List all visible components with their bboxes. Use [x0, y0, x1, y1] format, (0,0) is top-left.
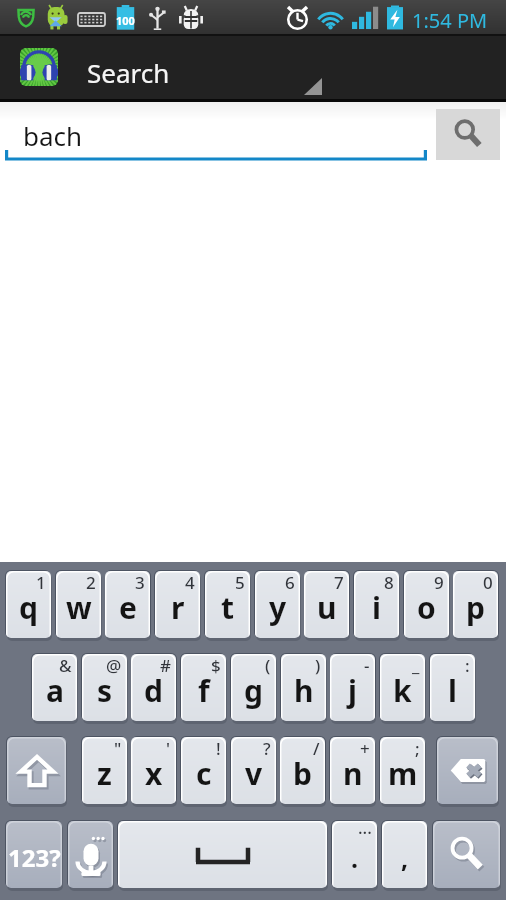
staticText: 0 [483, 571, 493, 594]
button[interactable]: @ [82, 654, 127, 721]
staticText: - [364, 654, 370, 677]
button[interactable]: 1 [6, 571, 51, 638]
staticText: 7 [334, 571, 344, 594]
button[interactable]: 7 [304, 571, 349, 638]
button[interactable]: 9 [404, 571, 449, 638]
button[interactable]: Search [436, 109, 500, 160]
button[interactable]: & [32, 654, 77, 721]
staticText: f [198, 670, 210, 711]
staticText: 1:54 PM [412, 7, 488, 34]
staticText: a [46, 670, 64, 711]
button[interactable]: shift [7, 737, 66, 804]
button[interactable]: ( [231, 654, 276, 721]
button[interactable]: ; [380, 737, 425, 804]
staticText: 1 [36, 571, 46, 594]
button[interactable]: 2 [56, 571, 101, 638]
staticText: x [145, 753, 163, 794]
button[interactable]: ) [281, 654, 326, 721]
button[interactable]: search [433, 821, 500, 888]
button[interactable]: " [82, 737, 127, 804]
staticText: p [466, 587, 485, 628]
staticText: ( [265, 654, 271, 677]
staticText: r [171, 587, 185, 628]
staticText: e [119, 587, 137, 628]
button[interactable]: mic [68, 821, 113, 888]
staticText: k [393, 670, 412, 711]
staticText: & [59, 654, 72, 677]
staticText: d [144, 670, 163, 711]
staticText: ! [216, 737, 221, 760]
staticText: t [221, 587, 235, 628]
button[interactable]: : [430, 654, 475, 721]
staticText: j [348, 670, 357, 711]
staticText: c [196, 753, 212, 794]
staticText: ; [415, 737, 420, 760]
staticText: @ [106, 654, 122, 677]
staticText: ··· [358, 821, 372, 844]
button[interactable]: 8 [354, 571, 399, 638]
button[interactable]: 123? [6, 821, 62, 888]
button[interactable]: ' [131, 737, 176, 804]
staticText: h [294, 670, 314, 711]
button[interactable]: App icon [20, 48, 58, 86]
button[interactable]: 0 [453, 571, 498, 638]
staticText: q [19, 587, 38, 628]
staticText: g [244, 670, 263, 711]
button[interactable]: + [330, 737, 375, 804]
staticText: $ [211, 654, 221, 677]
staticText: : [465, 654, 470, 677]
staticText: z [97, 753, 112, 794]
staticText: + [360, 737, 370, 760]
staticText: w [66, 587, 92, 628]
staticText: m [388, 753, 418, 794]
staticText: b [293, 753, 312, 794]
staticText: 9 [434, 571, 444, 594]
button[interactable]: / [280, 737, 325, 804]
staticText: , [401, 841, 409, 875]
staticText: v [245, 753, 263, 794]
staticText: 5 [235, 571, 245, 594]
button[interactable]: ··· [332, 821, 377, 888]
staticText: ? [263, 737, 271, 760]
staticText: i [372, 587, 381, 628]
staticText: 8 [384, 571, 394, 594]
button[interactable]: $ [181, 654, 226, 721]
staticText: bach [23, 118, 83, 153]
staticText: s [97, 670, 113, 711]
staticText: 3 [135, 571, 145, 594]
staticText: y [269, 587, 287, 628]
staticText: # [160, 654, 171, 677]
button[interactable]: # [131, 654, 176, 721]
staticText: u [317, 587, 337, 628]
staticText: " [114, 737, 122, 760]
staticText: n [343, 753, 363, 794]
staticText: 100 [116, 13, 135, 28]
button[interactable]: 6 [255, 571, 300, 638]
staticText: _ [412, 654, 420, 677]
staticText: 4 [185, 571, 195, 594]
button[interactable]: - [330, 654, 375, 721]
staticText: l [448, 670, 457, 711]
staticText: 6 [285, 571, 295, 594]
button[interactable]: _ [380, 654, 425, 721]
button[interactable]: del [437, 737, 498, 804]
button[interactable]: space [118, 821, 327, 888]
button[interactable]: ? [231, 737, 276, 804]
button[interactable]: 3 [105, 571, 150, 638]
button[interactable]: ! [181, 737, 226, 804]
button[interactable]: 5 [205, 571, 250, 638]
staticText: 2 [86, 571, 96, 594]
staticText: 123? [8, 841, 61, 874]
staticText: . [351, 841, 359, 875]
staticText: Search [87, 55, 170, 90]
staticText: ' [166, 737, 171, 760]
staticText: ) [315, 654, 321, 677]
staticText: o [417, 587, 436, 628]
button[interactable]: , [382, 821, 427, 888]
staticText: / [313, 737, 320, 760]
button[interactable]: 4 [155, 571, 200, 638]
